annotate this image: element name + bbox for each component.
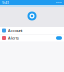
staticText: ••• <box>56 0 62 5</box>
button[interactable]: Alerts <box>0 34 64 41</box>
staticText: Alerts <box>8 35 19 41</box>
staticText: Account <box>8 28 22 33</box>
staticText: 9:41 <box>2 0 9 5</box>
button[interactable]: Account <box>0 27 64 34</box>
